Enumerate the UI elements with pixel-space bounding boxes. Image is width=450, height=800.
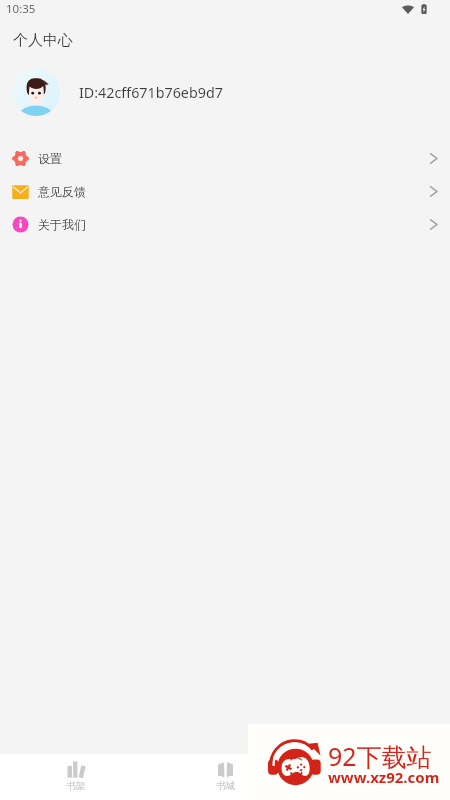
button[interactable]: 设置 xyxy=(0,142,450,175)
staticText: 我的 xyxy=(366,780,385,792)
staticText: 92下载站 xyxy=(328,739,432,773)
staticText: 意见反馈 xyxy=(38,184,86,199)
button[interactable]: 意见反馈 xyxy=(0,175,450,208)
staticText: ID:42cff671b76eb9d7 xyxy=(79,83,223,102)
staticText: 10:35 xyxy=(6,1,36,17)
button[interactable]: User avatar xyxy=(0,62,450,122)
button[interactable]: 书城 xyxy=(150,754,300,800)
staticText: 书架 xyxy=(66,780,85,792)
staticText: 书城 xyxy=(216,780,235,792)
other: User avatar xyxy=(12,68,60,116)
staticText: 个人中心 xyxy=(13,31,73,50)
staticText: 关于我们 xyxy=(38,217,86,232)
button[interactable]: 我的 xyxy=(300,754,450,800)
button[interactable]: 关于我们 xyxy=(0,208,450,241)
button[interactable]: 书架 xyxy=(0,754,150,800)
staticText: 设置 xyxy=(38,151,62,166)
staticText: www.xz92.com xyxy=(328,767,440,787)
